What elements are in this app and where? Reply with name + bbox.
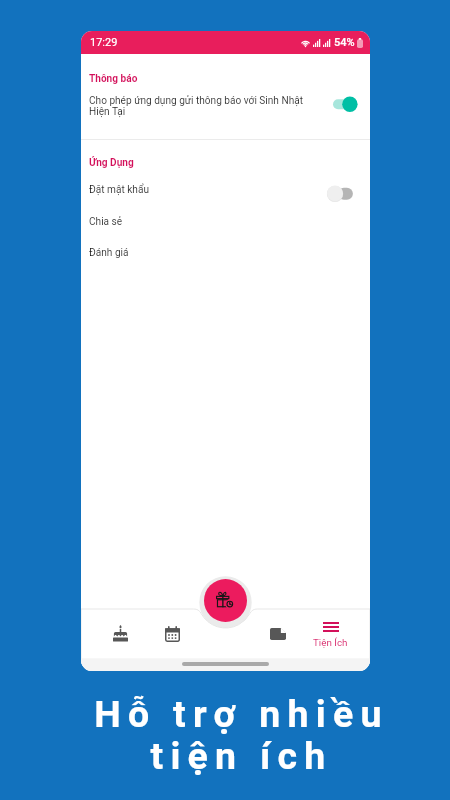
button[interactable]: Đặt mật khẩu: [81, 184, 370, 206]
staticText: Đánh giá: [89, 247, 129, 259]
button[interactable]: Notes: [251, 609, 304, 658]
button[interactable]: Add gift: [204, 579, 247, 622]
button[interactable]: Birthdays: [94, 609, 146, 658]
button[interactable]: [326, 185, 354, 203]
button[interactable]: Cho phép ứng dụng gửi thông báo với Sinh…: [81, 95, 370, 125]
staticText: tiện ích: [150, 734, 333, 778]
staticText: Đặt mật khẩu: [89, 184, 358, 196]
staticText: Ứng Dụng: [89, 157, 134, 169]
button[interactable]: Chia sẻ: [81, 216, 370, 238]
staticText: 17:29: [90, 36, 118, 49]
staticText: Tiện Ích: [313, 637, 348, 648]
button[interactable]: Đánh giá: [81, 247, 370, 269]
staticText: Chia sẻ: [89, 216, 123, 228]
button[interactable]: Calendar: [146, 609, 198, 658]
button[interactable]: [333, 96, 359, 114]
staticText: Cho phép ứng dụng gửi thông báo với Sinh…: [89, 95, 323, 118]
staticText: Hỗ trợ nhiều: [94, 692, 389, 736]
staticText: 54%: [334, 36, 355, 49]
staticText: Thông báo: [89, 73, 138, 85]
button[interactable]: Tiện Ích: [304, 609, 357, 658]
